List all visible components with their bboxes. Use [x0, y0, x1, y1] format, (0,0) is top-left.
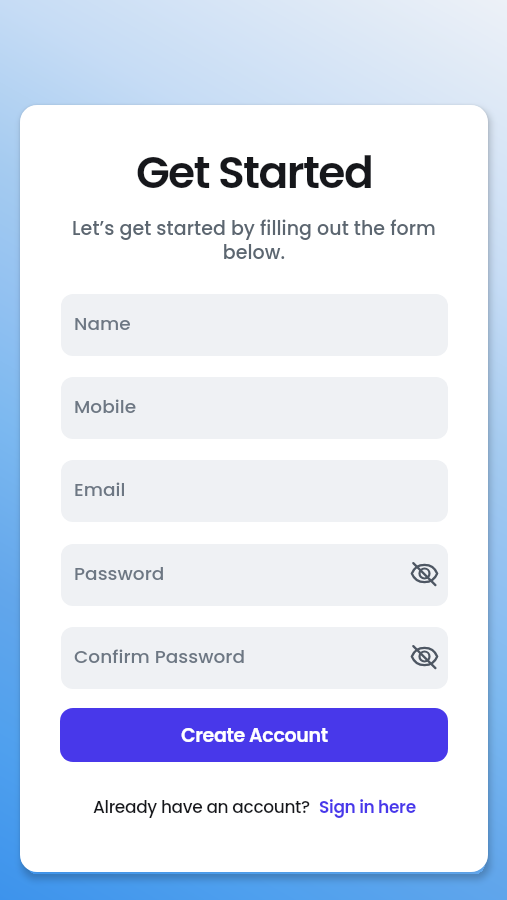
button[interactable]: Sign in here — [319, 795, 416, 819]
button[interactable]: Create Account — [60, 708, 448, 762]
staticText: Password — [74, 561, 165, 587]
staticText: Confirm Password — [74, 644, 246, 670]
staticText: Create Account — [181, 722, 328, 749]
button[interactable]: Name — [61, 294, 448, 356]
button[interactable]: Show password — [404, 638, 445, 679]
button[interactable]: Confirm Password — [61, 627, 448, 689]
staticText: Let’s get started by filling out the for… — [68, 215, 440, 265]
staticText: Sign in here — [319, 795, 416, 819]
staticText: Email — [74, 477, 126, 503]
button[interactable]: Password — [61, 544, 448, 606]
button[interactable]: Mobile — [61, 377, 448, 439]
staticText: Name — [74, 311, 131, 337]
staticText: Mobile — [74, 394, 137, 420]
button[interactable]: Email — [61, 460, 448, 522]
staticText: Get Started — [20, 142, 488, 204]
button[interactable]: Show password — [404, 555, 445, 596]
staticText: Already have an account? — [93, 795, 310, 819]
